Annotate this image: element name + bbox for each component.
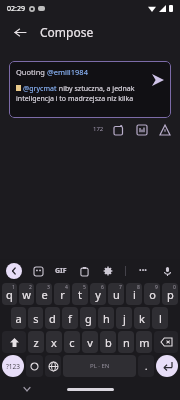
staticText: niby sztuczna, a jednak bbox=[57, 84, 135, 94]
button[interactable]: Quoting bbox=[9, 61, 171, 118]
staticText: 8 bbox=[137, 284, 140, 291]
button[interactable]: w bbox=[19, 283, 34, 305]
staticText: Quoting bbox=[16, 67, 47, 77]
button[interactable]: v bbox=[82, 331, 98, 353]
staticText: 7 bbox=[119, 284, 122, 291]
button[interactable]: r bbox=[54, 283, 70, 305]
button[interactable]: . bbox=[138, 355, 154, 377]
button[interactable]: y bbox=[90, 283, 106, 305]
staticText: @grycmat bbox=[23, 84, 57, 94]
button[interactable]: Voice input bbox=[160, 264, 174, 278]
staticText: 9 bbox=[155, 284, 158, 291]
staticText: 6 bbox=[101, 284, 104, 291]
button[interactable]: d bbox=[45, 307, 60, 329]
button[interactable]: f bbox=[62, 307, 78, 329]
button[interactable]: p bbox=[162, 283, 178, 305]
staticText: ?123 bbox=[6, 362, 20, 371]
button[interactable]: i bbox=[126, 283, 142, 305]
staticText: g bbox=[85, 311, 92, 326]
staticText: ••• bbox=[139, 266, 147, 276]
staticText: d bbox=[49, 311, 56, 326]
button[interactable]: Stickers bbox=[31, 264, 45, 278]
button[interactable]: Enter bbox=[156, 355, 178, 377]
button[interactable]: GIF bbox=[55, 266, 67, 276]
staticText: o bbox=[149, 287, 156, 302]
staticText: 172 bbox=[93, 125, 104, 133]
staticText: l bbox=[159, 311, 162, 326]
staticText: a bbox=[15, 311, 22, 326]
button[interactable]: Back bbox=[8, 20, 32, 44]
button[interactable]: Settings bbox=[101, 264, 115, 278]
button[interactable]: Collapse toolbar bbox=[6, 263, 22, 279]
staticText: w bbox=[22, 287, 31, 302]
staticText: v bbox=[87, 335, 93, 350]
button[interactable]: j bbox=[116, 307, 132, 329]
button[interactable]: s bbox=[28, 307, 43, 329]
button[interactable]: k bbox=[134, 307, 150, 329]
staticText: e bbox=[41, 287, 48, 302]
staticText: 1 bbox=[12, 284, 15, 291]
button[interactable]: n bbox=[118, 331, 134, 353]
button[interactable]: Send bbox=[149, 71, 167, 89]
button[interactable]: e bbox=[36, 283, 52, 305]
staticText: GIF bbox=[55, 266, 67, 276]
button[interactable]: u bbox=[108, 283, 124, 305]
staticText: j bbox=[123, 311, 126, 326]
button[interactable]: z bbox=[28, 331, 44, 353]
staticText: x bbox=[51, 335, 57, 350]
button[interactable]: Backspace bbox=[154, 331, 178, 353]
staticText: f bbox=[68, 311, 72, 326]
button[interactable]: c bbox=[64, 331, 80, 353]
staticText: t bbox=[78, 287, 82, 302]
button[interactable]: x bbox=[46, 331, 62, 353]
staticText: c bbox=[69, 335, 75, 350]
staticText: p bbox=[167, 287, 174, 302]
staticText: 0 bbox=[173, 284, 176, 291]
staticText: PL · EN bbox=[90, 362, 110, 370]
button[interactable]: l bbox=[152, 307, 168, 329]
staticText: . bbox=[145, 360, 148, 372]
button[interactable]: PL · EN bbox=[63, 355, 136, 377]
button[interactable]: Add image bbox=[111, 122, 126, 137]
staticText: Compose bbox=[40, 24, 94, 40]
staticText: y bbox=[95, 287, 101, 302]
button[interactable]: Content warning bbox=[157, 122, 172, 137]
button[interactable]: o bbox=[144, 283, 160, 305]
button[interactable]: g bbox=[80, 307, 96, 329]
button[interactable]: m bbox=[136, 331, 152, 353]
button[interactable]: More options bbox=[136, 264, 150, 278]
staticText: n bbox=[123, 335, 130, 350]
staticText: q bbox=[6, 287, 13, 302]
staticText: b bbox=[105, 335, 112, 350]
staticText: @emill1984 bbox=[47, 67, 88, 77]
staticText: m bbox=[139, 335, 150, 350]
staticText: h bbox=[103, 311, 110, 326]
button[interactable]: ?123 bbox=[2, 355, 24, 377]
staticText: r bbox=[60, 287, 65, 302]
staticText: inteligencja i to madrzejsza niz kilka bbox=[16, 94, 134, 104]
button[interactable]: b bbox=[100, 331, 116, 353]
button[interactable]: a bbox=[11, 307, 26, 329]
button[interactable]: Poll bbox=[134, 122, 149, 137]
staticText: 5 bbox=[83, 284, 86, 291]
staticText: s bbox=[33, 311, 39, 326]
staticText: u bbox=[113, 287, 120, 302]
staticText: k bbox=[139, 311, 145, 326]
button[interactable]: t bbox=[72, 283, 88, 305]
button[interactable]: Change language bbox=[45, 355, 61, 377]
button[interactable]: Clipboard bbox=[77, 264, 91, 278]
staticText: 3 bbox=[47, 284, 50, 291]
staticText: z bbox=[33, 335, 39, 350]
button[interactable]: Shift bbox=[2, 331, 26, 353]
button[interactable]: h bbox=[98, 307, 114, 329]
staticText: i bbox=[133, 287, 136, 302]
staticText: 2 bbox=[29, 284, 32, 291]
staticText: 4 bbox=[65, 284, 68, 291]
button[interactable]: Emoji bbox=[26, 355, 43, 377]
button[interactable]: q bbox=[2, 283, 17, 305]
staticText: 02:29 bbox=[7, 4, 25, 14]
button[interactable]: Hide keyboard bbox=[22, 384, 32, 394]
